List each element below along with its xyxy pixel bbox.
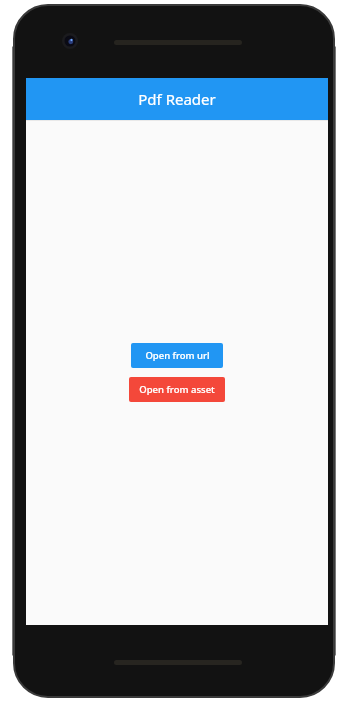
staticText: Open from url (145, 349, 210, 362)
staticText: Open from asset (139, 383, 215, 396)
button[interactable]: Open from asset (129, 377, 225, 402)
staticText: Pdf Reader (138, 89, 216, 109)
button[interactable]: Open from url (131, 343, 223, 368)
